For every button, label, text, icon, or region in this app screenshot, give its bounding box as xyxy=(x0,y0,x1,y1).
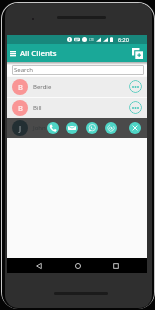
staticText: All Clients xyxy=(20,48,57,59)
staticText: Bill xyxy=(33,104,42,112)
button[interactable]: More options xyxy=(129,101,142,114)
button[interactable]: B xyxy=(7,97,147,118)
button[interactable]: More options xyxy=(129,80,142,93)
button[interactable]: Search xyxy=(12,65,144,75)
staticText: J xyxy=(19,123,22,133)
button[interactable]: WhatsApp xyxy=(86,122,98,134)
staticText: LTE xyxy=(89,38,94,42)
button[interactable]: Recent apps xyxy=(109,259,122,272)
button[interactable]: Menu xyxy=(7,47,19,59)
button[interactable]: Email xyxy=(66,122,78,134)
staticText: B xyxy=(18,82,23,92)
button[interactable]: Back xyxy=(32,259,45,272)
staticText: John xyxy=(33,124,46,132)
button[interactable]: Add client xyxy=(131,47,144,60)
button[interactable]: Call xyxy=(47,122,59,134)
button[interactable]: Send mail xyxy=(105,122,117,134)
button[interactable]: Close xyxy=(129,122,141,134)
button[interactable]: Home xyxy=(71,259,84,272)
staticText: 6:20 xyxy=(118,36,129,43)
button[interactable]: B xyxy=(7,76,147,97)
staticText: Berdie xyxy=(33,83,52,91)
staticText: Search xyxy=(14,66,33,74)
staticText: B xyxy=(18,103,23,113)
